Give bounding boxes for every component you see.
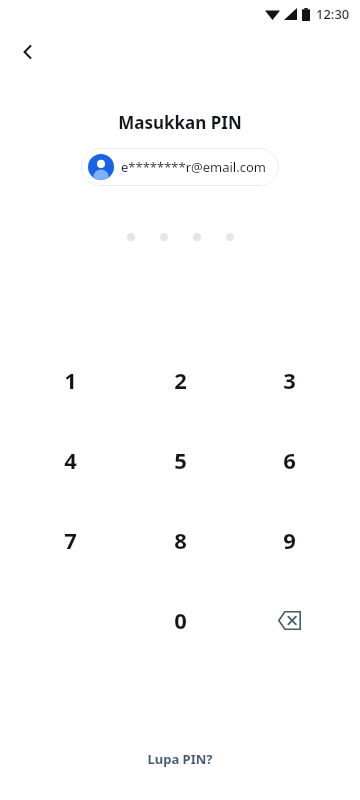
staticText: 6: [283, 445, 296, 475]
button[interactable]: 1: [34, 344, 106, 416]
button[interactable]: 3: [253, 344, 325, 416]
button[interactable]: 2: [144, 344, 216, 416]
staticText: 3: [283, 365, 296, 395]
staticText: 5: [174, 445, 187, 475]
staticText: e********r@email.com: [121, 158, 266, 176]
button[interactable]: 6: [253, 424, 325, 496]
button[interactable]: 5: [144, 424, 216, 496]
staticText: Lupa PIN?: [147, 750, 213, 768]
staticText: 2: [174, 365, 187, 395]
staticText: 0: [174, 605, 187, 635]
staticText: 9: [283, 525, 296, 555]
button[interactable]: e********r@email.com: [81, 148, 279, 186]
staticText: 7: [64, 525, 77, 555]
button[interactable]: Lupa PIN?: [131, 744, 229, 774]
button[interactable]: 0: [144, 584, 216, 656]
button[interactable]: 4: [34, 424, 106, 496]
button[interactable]: 8: [144, 504, 216, 576]
staticText: 12:30: [316, 5, 350, 23]
button[interactable]: 7: [34, 504, 106, 576]
staticText: 1: [64, 365, 77, 395]
button[interactable]: Back: [8, 32, 48, 72]
staticText: Masukkan PIN: [0, 111, 360, 134]
staticText: 4: [64, 445, 77, 475]
button[interactable]: 9: [253, 504, 325, 576]
staticText: 8: [174, 525, 187, 555]
button[interactable]: Backspace: [257, 588, 321, 652]
